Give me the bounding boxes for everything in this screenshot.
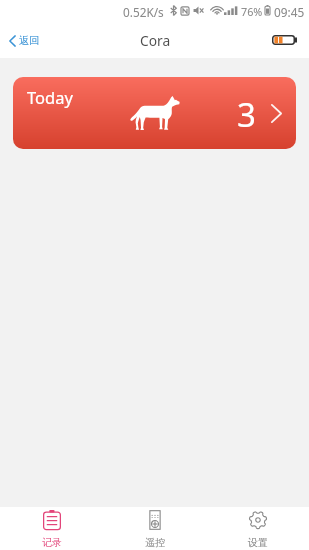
staticText: 遥控 <box>145 536 165 549</box>
button[interactable]: 设置 <box>206 507 309 550</box>
staticText: 返回 <box>19 34 40 47</box>
button[interactable]: 记录 <box>0 507 103 550</box>
staticText: 记录 <box>42 536 62 549</box>
staticText: 3 <box>237 92 256 137</box>
button[interactable]: Device battery level <box>262 27 309 53</box>
staticText: Cora <box>140 31 171 50</box>
button[interactable]: 返回 <box>0 28 50 53</box>
staticText: 设置 <box>248 536 268 549</box>
staticText: 0.52K/s <box>123 4 164 20</box>
button[interactable]: Today <box>13 77 296 149</box>
button[interactable]: 遥控 <box>103 507 206 550</box>
staticText: 09:45 <box>274 4 305 20</box>
staticText: Today <box>27 86 73 108</box>
staticText: 76% <box>241 4 263 19</box>
